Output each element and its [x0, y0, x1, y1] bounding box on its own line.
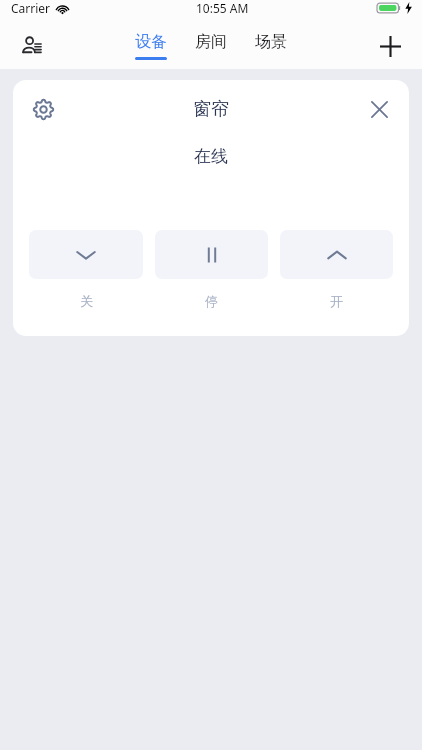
staticText: 设备	[135, 32, 167, 52]
staticText: Carrier	[11, 0, 51, 16]
button[interactable]: Close	[29, 230, 143, 279]
button[interactable]: Settings	[25, 91, 61, 127]
button[interactable]: 房间	[191, 32, 231, 60]
staticText: 场景	[255, 32, 287, 52]
button[interactable]: 设备	[131, 32, 171, 60]
button[interactable]: Account	[12, 26, 52, 66]
staticText: 窗帘	[193, 98, 229, 121]
button[interactable]: Add	[370, 26, 410, 66]
staticText: 开	[330, 293, 343, 309]
button[interactable]: Open	[280, 230, 393, 279]
button[interactable]: 场景	[251, 32, 291, 60]
button[interactable]: Close	[362, 92, 396, 126]
staticText: 房间	[195, 32, 227, 52]
staticText: 停	[205, 293, 218, 309]
button[interactable]: Stop	[155, 230, 268, 279]
staticText: 10:55 AM	[196, 0, 249, 16]
staticText: 在线	[194, 146, 228, 167]
staticText: 关	[80, 293, 93, 309]
